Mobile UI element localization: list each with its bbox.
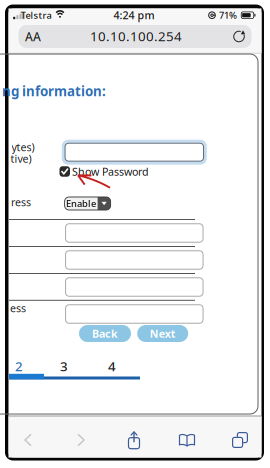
button[interactable]: Next: [137, 325, 188, 342]
button[interactable]: Enable: [65, 197, 111, 210]
staticText: Enable: [66, 197, 96, 210]
button[interactable]: Reload: [225, 25, 253, 48]
button[interactable]: Back: [6, 424, 50, 456]
staticText: ress: [11, 195, 31, 209]
button[interactable]: Back: [79, 325, 131, 342]
button[interactable]: Tabs: [218, 424, 262, 456]
staticText: ess: [10, 301, 26, 315]
button[interactable]: Forward: [59, 424, 103, 456]
staticText: 10.10.100.254: [90, 27, 182, 45]
staticText: Telstra: [20, 9, 51, 21]
staticText: 2: [15, 357, 23, 375]
staticText: tive): [10, 151, 31, 166]
staticText: ng information:: [2, 82, 106, 100]
button[interactable]: Page settings: [18, 25, 48, 48]
button[interactable]: Show Password: [59, 165, 149, 178]
button[interactable]: Share: [112, 424, 156, 456]
staticText: Show Password: [72, 164, 149, 179]
staticText: 4: [108, 357, 116, 375]
staticText: Next: [150, 326, 176, 341]
staticText: 3: [60, 357, 68, 375]
staticText: 71%: [219, 9, 237, 21]
staticText: ytes): [11, 140, 34, 154]
button[interactable]: Bookmarks: [165, 424, 209, 456]
staticText: Back: [92, 326, 118, 341]
staticText: AA: [25, 28, 41, 44]
staticText: 4:24 pm: [113, 8, 154, 22]
